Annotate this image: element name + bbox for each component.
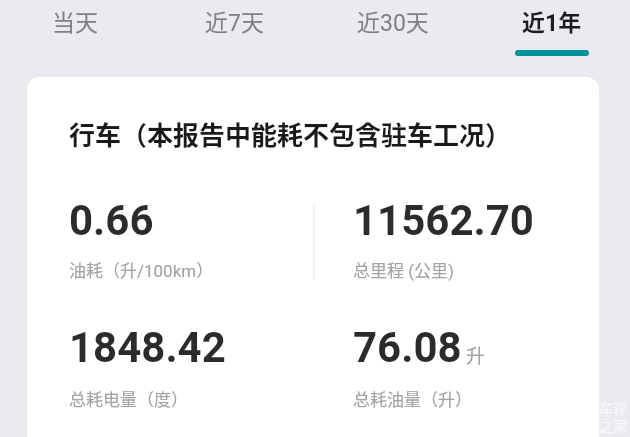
staticText: 11562.70 (353, 196, 534, 245)
button[interactable]: 当天 (5, 0, 145, 60)
staticText: 近7天 (205, 4, 264, 37)
staticText: 0.66 (69, 196, 154, 245)
staticText: 总耗电量（度） (69, 386, 188, 411)
staticText: 升 (466, 341, 486, 369)
button[interactable]: 近1年 (482, 0, 622, 60)
staticText: 总里程 (公里) (353, 257, 454, 282)
staticText: 近30天 (357, 4, 429, 37)
staticText: 车评 (599, 398, 627, 418)
staticText: 1848.42 (69, 323, 226, 372)
button[interactable]: 近7天 (164, 0, 304, 60)
staticText: 当天 (52, 4, 98, 37)
staticText: 近1年 (522, 4, 582, 37)
staticText: 之家 (599, 415, 627, 435)
staticText: 油耗（升/100km） (69, 257, 214, 282)
button[interactable]: 近30天 (323, 0, 463, 60)
staticText: 76.08 (353, 323, 462, 372)
staticText: 行车（本报告中能耗不包含驻车工况） (69, 115, 512, 153)
staticText: 总耗油量（升） (353, 386, 472, 411)
